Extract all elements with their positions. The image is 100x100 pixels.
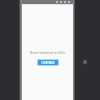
button[interactable]: CONTINUE xyxy=(38,60,58,65)
staticText: Never bothered to fill in xyxy=(25,51,70,55)
button[interactable]: Tool xyxy=(83,60,87,64)
staticText: CONTINUE xyxy=(41,61,55,65)
